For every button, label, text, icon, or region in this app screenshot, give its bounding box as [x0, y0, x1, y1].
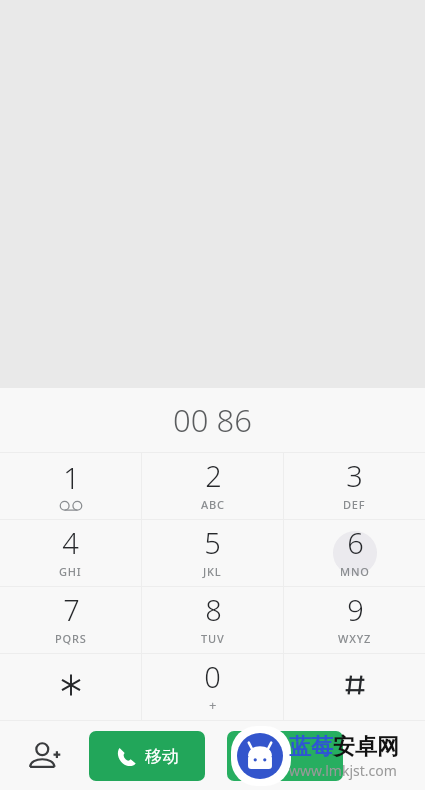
- staticText: 2: [205, 456, 222, 495]
- staticText: PQRS: [55, 631, 87, 646]
- button[interactable]: 5: [142, 520, 283, 586]
- staticText: MNO: [340, 564, 370, 579]
- button[interactable]: 移动: [89, 731, 205, 781]
- button[interactable]: Call with SIM 2: [227, 731, 343, 781]
- staticText: 8: [205, 590, 222, 629]
- button[interactable]: 3: [284, 453, 425, 519]
- button[interactable]: 1: [0, 453, 141, 519]
- button[interactable]: 9: [284, 587, 425, 653]
- button[interactable]: 6: [284, 520, 425, 586]
- button[interactable]: Add contact: [14, 728, 76, 784]
- staticText: TUV: [201, 631, 225, 646]
- staticText: ABC: [201, 497, 225, 512]
- staticText: WXYZ: [338, 631, 372, 646]
- staticText: 安卓网: [333, 733, 399, 761]
- staticText: 5: [204, 523, 221, 562]
- button[interactable]: 2: [142, 453, 283, 519]
- staticText: GHI: [59, 564, 82, 579]
- staticText: DEF: [343, 497, 366, 512]
- staticText: 4: [62, 523, 79, 562]
- staticText: 0: [204, 657, 221, 696]
- button[interactable]: 0: [142, 654, 283, 720]
- button[interactable]: 8: [142, 587, 283, 653]
- staticText: +: [209, 696, 217, 714]
- staticText: 6: [347, 523, 364, 562]
- staticText: 蓝莓: [289, 733, 333, 761]
- button[interactable]: [0, 654, 141, 720]
- staticText: 7: [63, 590, 80, 629]
- staticText: www.lmkjst.com: [289, 761, 397, 780]
- staticText: 9: [347, 590, 364, 629]
- staticText: JKL: [203, 564, 222, 579]
- staticText: 移动: [145, 746, 179, 767]
- button[interactable]: 4: [0, 520, 141, 586]
- staticText: 1: [63, 458, 80, 497]
- button[interactable]: [284, 654, 425, 720]
- button[interactable]: 7: [0, 587, 141, 653]
- staticText: 00 86: [173, 399, 252, 441]
- staticText: 3: [346, 456, 363, 495]
